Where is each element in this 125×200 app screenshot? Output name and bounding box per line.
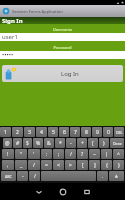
staticText: %	[36, 140, 41, 147]
button[interactable]: 0	[103, 127, 113, 137]
button[interactable]: -	[17, 171, 28, 181]
staticText: ABC	[5, 174, 12, 179]
button[interactable]: 4	[36, 127, 47, 137]
button[interactable]: ^	[113, 149, 124, 159]
staticText: -	[70, 140, 72, 147]
staticText: 1	[4, 129, 7, 136]
button[interactable]: Home	[56, 185, 70, 199]
button[interactable]: /	[29, 171, 40, 181]
staticText: :	[46, 151, 48, 158]
button[interactable]: (	[88, 138, 98, 148]
button[interactable]: ?	[77, 149, 88, 159]
staticText: .	[102, 173, 104, 180]
button[interactable]: 8	[81, 127, 91, 137]
staticText: 2	[16, 129, 19, 136]
button[interactable]: 1	[0, 127, 11, 137]
staticText	[68, 173, 70, 180]
button[interactable]: @	[3, 138, 12, 148]
button[interactable]: <	[53, 160, 64, 170]
staticText: Done	[113, 141, 122, 146]
staticText: DEL	[116, 130, 123, 135]
button[interactable]: >	[65, 160, 76, 170]
button[interactable]: $	[23, 138, 32, 148]
staticText: Password	[0, 45, 125, 50]
button[interactable]: #	[13, 138, 22, 148]
staticText: *	[59, 140, 62, 147]
staticText: =	[45, 162, 48, 169]
staticText: ▲	[115, 174, 118, 178]
staticText: +	[81, 140, 84, 147]
button[interactable]: *	[55, 138, 65, 148]
staticText: '	[33, 151, 35, 158]
button[interactable]: /	[28, 160, 40, 170]
button[interactable]: _	[15, 160, 27, 170]
button[interactable]: 2	[12, 127, 23, 137]
staticText: 4	[40, 129, 43, 136]
staticText: 7	[74, 129, 77, 136]
button[interactable]: ABC	[1, 171, 16, 181]
button[interactable]: .	[97, 171, 108, 181]
staticText: ?	[81, 151, 84, 158]
staticText: /	[33, 162, 35, 169]
button[interactable]: Log In	[2, 65, 123, 82]
button[interactable]: ,	[2, 160, 14, 170]
staticText: _	[20, 162, 23, 169]
button[interactable]: )	[99, 138, 109, 148]
button[interactable]: 9	[92, 127, 102, 137]
staticText: ;	[58, 151, 60, 158]
button[interactable]: DEL	[114, 127, 124, 137]
staticText: ^	[117, 151, 120, 158]
staticText: $	[26, 140, 29, 147]
button[interactable]: }	[113, 160, 124, 170]
button[interactable]: 5	[48, 127, 58, 137]
staticText: ,	[7, 162, 9, 169]
staticText: /	[34, 173, 36, 180]
button[interactable]: /	[65, 149, 76, 159]
button[interactable]: ]	[89, 160, 100, 170]
button[interactable]: :	[41, 149, 52, 159]
button[interactable]: ▲	[109, 171, 124, 181]
staticText: !	[7, 151, 9, 158]
button[interactable]: ~	[89, 149, 100, 159]
staticText: 8	[85, 129, 88, 136]
button[interactable]: !	[2, 149, 14, 159]
staticText: 3	[28, 129, 31, 136]
button[interactable]: 7	[70, 127, 80, 137]
button[interactable]: |	[101, 149, 112, 159]
staticText: {	[106, 162, 108, 169]
staticText: "	[20, 151, 23, 158]
staticText: [	[82, 162, 84, 169]
button[interactable]: user1	[2, 33, 125, 41]
staticText: Username	[0, 27, 125, 32]
staticText: •••••	[2, 51, 14, 59]
staticText: &	[47, 140, 51, 147]
staticText: ]	[94, 162, 96, 169]
button[interactable]: 6	[59, 127, 69, 137]
button[interactable]: {	[101, 160, 112, 170]
staticText: /	[70, 151, 72, 158]
button[interactable]	[41, 171, 96, 181]
staticText: (	[92, 140, 94, 147]
staticText: 6	[63, 129, 66, 136]
staticText: @	[5, 140, 10, 147]
button[interactable]: ;	[53, 149, 64, 159]
button[interactable]: %	[33, 138, 43, 148]
button[interactable]: '	[28, 149, 40, 159]
button[interactable]: -	[66, 138, 76, 148]
button[interactable]: "	[15, 149, 27, 159]
staticText: )	[103, 140, 105, 147]
staticText: ~	[93, 151, 96, 158]
button[interactable]: +	[77, 138, 87, 148]
button[interactable]: Back	[32, 185, 46, 199]
button[interactable]: [	[77, 160, 88, 170]
button[interactable]: 3	[24, 127, 35, 137]
button[interactable]: •••••	[2, 51, 125, 59]
button[interactable]: Done	[110, 138, 124, 148]
button[interactable]: &	[44, 138, 54, 148]
staticText: Sign In	[2, 17, 23, 24]
staticText: }	[118, 162, 120, 169]
staticText: Xamarin Forms Application	[12, 9, 63, 14]
button[interactable]: =	[41, 160, 52, 170]
button[interactable]: Recent apps	[80, 185, 94, 199]
staticText: 5	[52, 129, 55, 136]
